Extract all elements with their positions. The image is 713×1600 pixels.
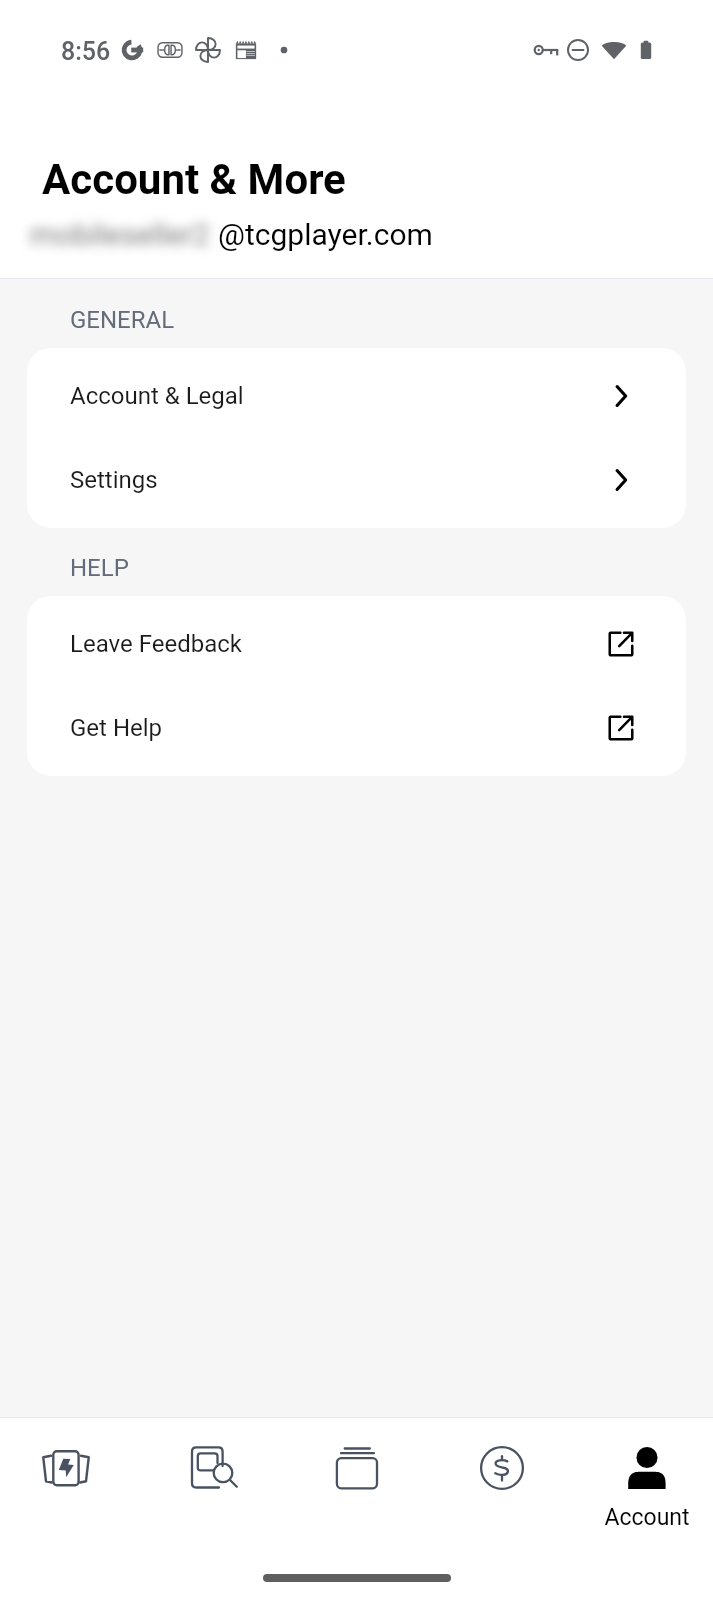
button[interactable]: Deals [16,1418,116,1528]
staticText: Get Help [70,714,163,742]
button[interactable]: Collection [307,1418,407,1528]
staticText: Account & Legal [70,382,244,410]
staticText: GENERAL [70,306,175,334]
button[interactable]: Search [161,1418,261,1528]
button[interactable]: Settings [27,438,686,522]
button[interactable]: Account [597,1418,697,1528]
staticText: HELP [70,554,129,582]
staticText: Leave Feedback [70,630,242,658]
staticText: Account & More [42,155,346,204]
staticText: mobileseller22 [30,217,218,252]
button[interactable]: Sell [452,1418,552,1528]
staticText: 8:56 [61,37,111,66]
staticText: Settings [70,466,158,494]
button[interactable]: Get Help [27,686,686,770]
staticText: @tcgplayer.com [218,217,433,252]
button[interactable]: Account & Legal [27,354,686,438]
button[interactable]: Leave Feedback [27,602,686,686]
staticText: Account [604,1504,690,1528]
